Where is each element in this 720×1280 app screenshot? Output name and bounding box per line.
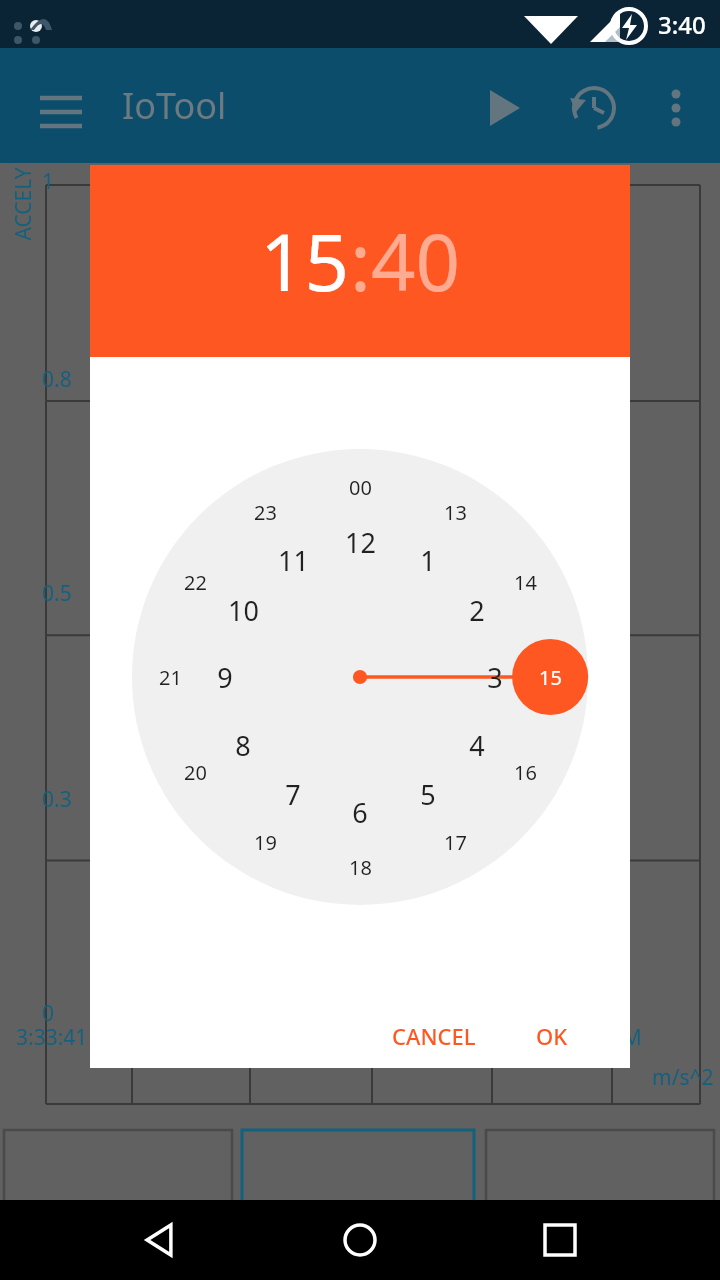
button[interactable]: 15 (260, 208, 350, 314)
button[interactable]: 3 (469, 651, 521, 703)
button[interactable]: 7 (267, 768, 319, 820)
staticText: 21 (159, 664, 182, 691)
button[interactable]: Navigation menu (30, 80, 82, 132)
staticText: 15 (539, 664, 562, 691)
button[interactable]: 8 (217, 719, 269, 771)
button[interactable]: Recent apps (520, 1200, 600, 1280)
staticText: 16 (514, 759, 537, 786)
button[interactable]: 22 (169, 556, 221, 608)
button[interactable]: 9 (199, 651, 251, 703)
button[interactable]: 17 (429, 816, 481, 868)
staticText: 1 (42, 167, 55, 196)
button[interactable]: AccelZ (480, 1130, 720, 1280)
staticText: 00 (349, 474, 372, 501)
staticText: 19 (254, 829, 277, 856)
button[interactable]: 2 (451, 584, 503, 636)
button[interactable]: 12 (334, 516, 386, 568)
staticText: 13 (444, 499, 467, 526)
staticText: IoTool (122, 81, 227, 130)
button[interactable]: History (566, 80, 618, 132)
staticText: 7 (285, 776, 301, 813)
button[interactable]: 15 (524, 651, 576, 703)
staticText: 3:33:41 (16, 1023, 88, 1052)
button[interactable]: 10 (217, 584, 269, 636)
button[interactable]: 16 (499, 746, 551, 798)
staticText: 9 (217, 659, 233, 696)
button[interactable]: Start (474, 80, 526, 132)
staticText: 8 (235, 727, 251, 764)
staticText: AccelZ (555, 1225, 645, 1266)
staticText: 3:40 (658, 8, 706, 41)
button[interactable]: 13 (429, 486, 481, 538)
staticText: 23 (254, 499, 277, 526)
staticText: 0 (42, 999, 55, 1028)
staticText: AccelX (75, 1225, 166, 1266)
button[interactable]: OK (520, 1011, 584, 1061)
staticText: 6 (352, 794, 368, 831)
button[interactable]: CANCEL (376, 1011, 492, 1061)
staticText: 2 (469, 592, 485, 629)
staticText: 0.5 (42, 579, 72, 608)
staticText: 14 (514, 569, 537, 596)
staticText: 22 (184, 569, 207, 596)
staticText: ACCELY (8, 166, 37, 240)
staticText: OK (536, 1021, 568, 1051)
button[interactable]: AccelY (240, 1130, 480, 1280)
button[interactable]: 00 (334, 461, 386, 513)
staticText: 18 (349, 854, 372, 881)
staticText: 12 (345, 524, 376, 561)
staticText: 17 (444, 829, 467, 856)
button[interactable]: 14 (499, 556, 551, 608)
button[interactable]: Back (120, 1200, 200, 1280)
button[interactable]: 11 (267, 534, 319, 586)
staticText: : (350, 208, 371, 314)
button[interactable]: 1 (402, 534, 454, 586)
staticText: 20 (184, 759, 207, 786)
button[interactable]: 21 (144, 651, 196, 703)
staticText: m/s^2 (652, 1063, 714, 1092)
button[interactable]: 5 (402, 768, 454, 820)
button[interactable]: AccelX (0, 1130, 240, 1280)
staticText: AccelY (315, 1225, 405, 1266)
button[interactable]: 4 (451, 719, 503, 771)
button[interactable]: 20 (169, 746, 221, 798)
staticText: 11 (278, 542, 309, 579)
staticText: 0.3 (42, 785, 72, 814)
staticText: 10 (228, 592, 259, 629)
button[interactable]: 19 (239, 816, 291, 868)
staticText: 0.8 (42, 365, 72, 394)
staticText: 3 (487, 659, 503, 696)
staticText: 1 (420, 542, 436, 579)
staticText: PM (610, 1023, 642, 1052)
staticText: 5 (420, 776, 436, 813)
button[interactable]: Home (320, 1200, 400, 1280)
button[interactable]: 40 (371, 208, 461, 314)
staticText: 4 (469, 727, 485, 764)
button[interactable]: More options (650, 80, 702, 132)
button[interactable]: 6 (334, 786, 386, 838)
staticText: CANCEL (392, 1021, 476, 1051)
button[interactable]: 23 (239, 486, 291, 538)
button[interactable]: 18 (334, 841, 386, 893)
